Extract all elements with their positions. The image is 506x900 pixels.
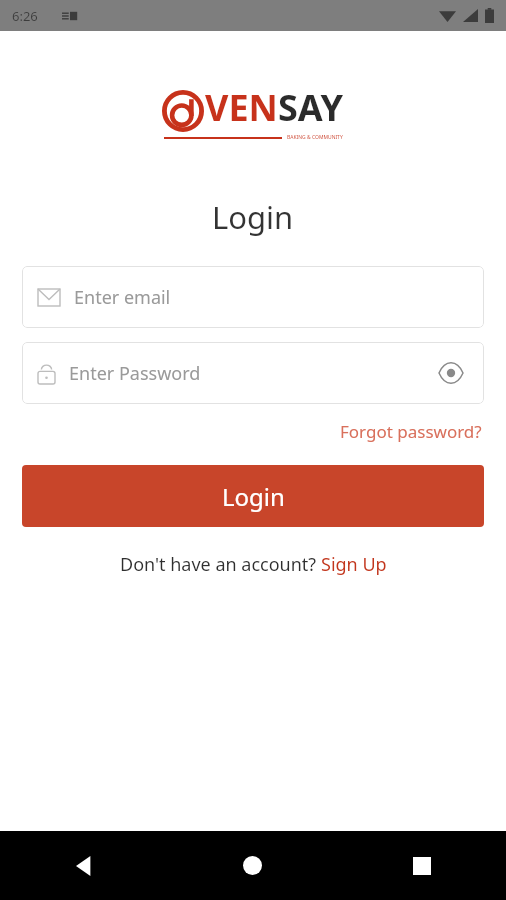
staticText: Forgot password? bbox=[340, 420, 482, 443]
button[interactable]: Sign Up bbox=[321, 552, 387, 577]
staticText: 6:26 bbox=[12, 7, 38, 25]
staticText: Enter email bbox=[74, 285, 468, 310]
button[interactable]: Enter Password bbox=[22, 342, 484, 404]
button[interactable]: Home bbox=[168, 831, 337, 900]
staticText: BAKING & COMMUNITY bbox=[287, 134, 343, 141]
button[interactable]: Recents bbox=[337, 831, 506, 900]
staticText: Enter Password bbox=[69, 361, 434, 386]
staticText: Login bbox=[222, 480, 285, 513]
button[interactable]: Enter email bbox=[22, 266, 484, 328]
button[interactable]: Login bbox=[22, 465, 484, 527]
button[interactable]: Back bbox=[0, 831, 168, 900]
staticText: SAY bbox=[278, 83, 344, 132]
button[interactable]: Show password bbox=[434, 356, 468, 390]
staticText: Login bbox=[212, 196, 294, 238]
button[interactable]: Forgot password? bbox=[338, 417, 484, 446]
staticText: VEN bbox=[205, 83, 278, 132]
staticText: Don't have an account? bbox=[120, 552, 321, 577]
staticText: Sign Up bbox=[321, 552, 387, 577]
